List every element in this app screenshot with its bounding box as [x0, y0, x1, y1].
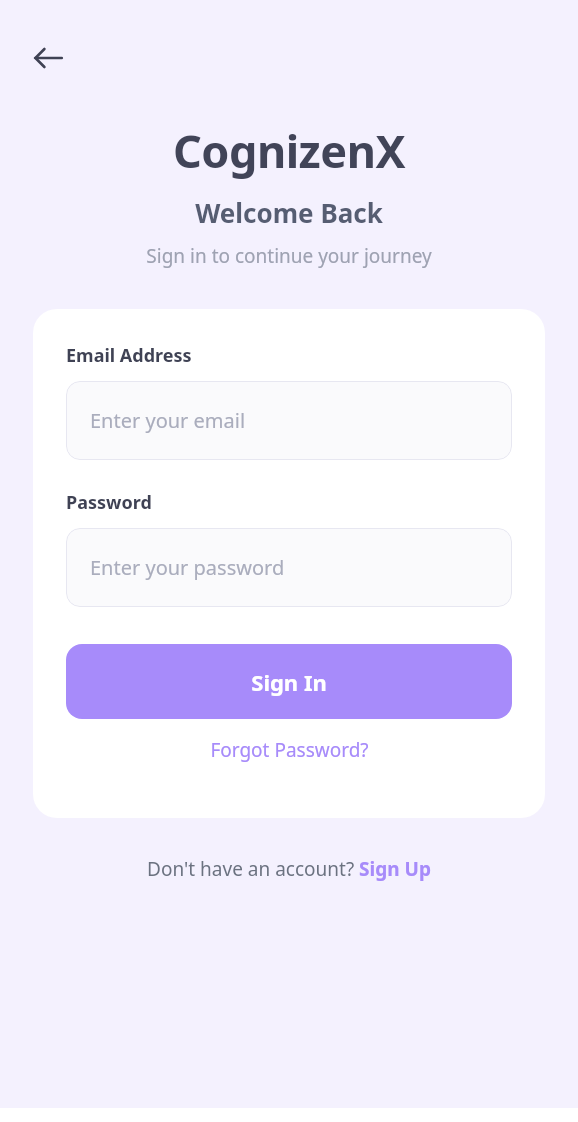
- staticText: Enter your email: [90, 407, 246, 434]
- staticText: Sign in to continue your journey: [0, 243, 578, 269]
- button[interactable]: Back: [22, 32, 74, 84]
- staticText: Enter your password: [90, 554, 285, 581]
- button[interactable]: Enter your email: [66, 381, 512, 460]
- staticText: Forgot Password?: [210, 737, 369, 763]
- staticText: CognizenX: [0, 120, 578, 181]
- staticText: Don't have an account? Sign Up: [147, 856, 431, 882]
- staticText: Sign In: [251, 667, 327, 697]
- staticText: Welcome Back: [0, 195, 578, 230]
- button[interactable]: Forgot Password?: [66, 731, 512, 769]
- button[interactable]: Sign In: [66, 644, 512, 719]
- button[interactable]: Don't have an account? Sign Up: [143, 852, 435, 886]
- staticText: Email Address: [66, 343, 192, 368]
- button[interactable]: Enter your password: [66, 528, 512, 607]
- staticText: Password: [66, 490, 152, 515]
